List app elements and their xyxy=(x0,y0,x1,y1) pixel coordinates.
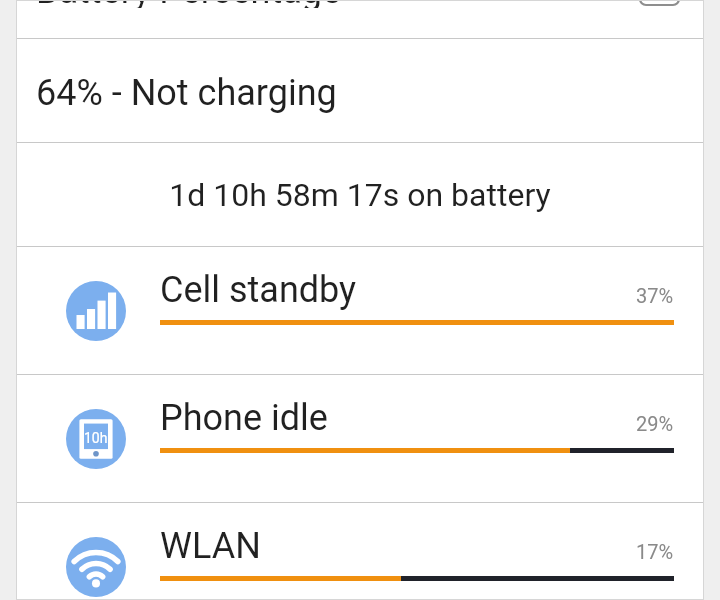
other: Toggle battery percentage xyxy=(640,0,679,5)
button[interactable]: 10h xyxy=(16,375,704,502)
button[interactable]: Battery Percentage xyxy=(16,0,704,38)
button[interactable]: WLAN xyxy=(16,503,704,600)
staticText: Battery Percentage xyxy=(36,0,342,8)
staticText: 29% xyxy=(636,412,674,435)
staticText: 17% xyxy=(636,540,674,563)
staticText: Phone idle xyxy=(160,397,636,439)
staticText: 64% - Not charging xyxy=(36,72,337,114)
staticText: Cell standby xyxy=(160,269,636,311)
button[interactable]: 64% - Not charging xyxy=(16,39,704,142)
staticText: 1d 10h 58m 17s on battery xyxy=(169,176,551,214)
staticText: 10h xyxy=(84,430,108,446)
button[interactable]: 1d 10h 58m 17s on battery xyxy=(16,143,704,246)
button[interactable]: Cell standby xyxy=(16,247,704,374)
staticText: 37% xyxy=(636,284,674,307)
staticText: WLAN xyxy=(160,525,636,567)
